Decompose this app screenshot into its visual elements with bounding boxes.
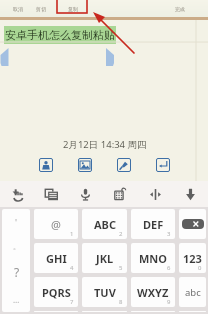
staticText: 9 bbox=[167, 298, 171, 306]
staticText: ABC bbox=[94, 217, 116, 232]
staticText: 5 bbox=[119, 264, 123, 272]
staticText: 3 bbox=[167, 230, 171, 238]
button[interactable]: Undo bbox=[156, 158, 170, 172]
staticText: 7 bbox=[70, 298, 74, 306]
staticText: PQRS bbox=[42, 285, 71, 300]
button[interactable]: PQRS bbox=[34, 277, 78, 307]
button[interactable]: 取消 bbox=[9, 3, 27, 15]
staticText: 0 bbox=[198, 264, 202, 272]
button[interactable]: Voice input bbox=[68, 181, 103, 207]
button[interactable]: ABC bbox=[82, 209, 127, 239]
button[interactable]: Backspace bbox=[179, 209, 206, 239]
button[interactable]: Attach bbox=[117, 158, 131, 172]
staticText: GHI bbox=[46, 251, 67, 266]
button[interactable]: 123 bbox=[179, 243, 206, 273]
staticText: … bbox=[13, 294, 20, 305]
staticText: 取消 bbox=[13, 6, 23, 12]
button[interactable]: DEF bbox=[131, 209, 175, 239]
button[interactable]: JKL bbox=[82, 243, 127, 273]
button[interactable]: Copy paste bbox=[34, 181, 68, 207]
staticText: WXYZ bbox=[137, 285, 169, 300]
button[interactable]: Hide keyboard bbox=[173, 181, 208, 207]
staticText: 1 bbox=[70, 230, 74, 238]
staticText: 8 bbox=[119, 298, 123, 306]
staticText: 6 bbox=[167, 264, 171, 272]
button[interactable]: abc bbox=[179, 277, 206, 307]
button[interactable]: GHI bbox=[34, 243, 78, 273]
staticText: abc bbox=[185, 286, 201, 299]
button[interactable]: ' bbox=[2, 209, 30, 312]
staticText: 完成 bbox=[175, 6, 185, 12]
button[interactable]: MNO bbox=[131, 243, 175, 273]
button[interactable]: Select cursor bbox=[0, 181, 34, 207]
button[interactable]: 复制 bbox=[64, 3, 82, 15]
staticText: 剪切 bbox=[36, 6, 46, 12]
staticText: ? bbox=[14, 264, 20, 280]
staticText: 2 bbox=[119, 230, 123, 238]
button[interactable]: TUV bbox=[82, 277, 127, 307]
button[interactable]: 剪切 bbox=[32, 3, 50, 15]
button[interactable]: Insert image bbox=[78, 158, 92, 172]
staticText: 。 bbox=[13, 242, 20, 251]
button[interactable]: WXYZ bbox=[131, 277, 175, 307]
staticText: 123 bbox=[183, 251, 202, 266]
button[interactable]: 完成 bbox=[171, 3, 189, 15]
staticText: TUV bbox=[94, 285, 116, 300]
button[interactable]: Insert contact bbox=[39, 158, 53, 172]
staticText: JKL bbox=[96, 251, 114, 266]
button[interactable]: Keyboard grid bbox=[103, 181, 138, 207]
button[interactable]: Move cursor bbox=[138, 181, 173, 207]
staticText: 4 bbox=[70, 264, 74, 272]
staticText: ' bbox=[15, 216, 18, 228]
staticText: DEF bbox=[143, 217, 164, 232]
button[interactable]: @ bbox=[34, 209, 78, 239]
staticText: 复制 bbox=[68, 6, 78, 12]
other: Backspace bbox=[182, 219, 204, 229]
staticText: 2月12日 14:34 周四 bbox=[63, 138, 147, 151]
staticText: MNO bbox=[139, 251, 168, 266]
staticText: @ bbox=[51, 217, 61, 232]
staticText: 安卓手机怎么复制粘贴 bbox=[5, 28, 115, 42]
